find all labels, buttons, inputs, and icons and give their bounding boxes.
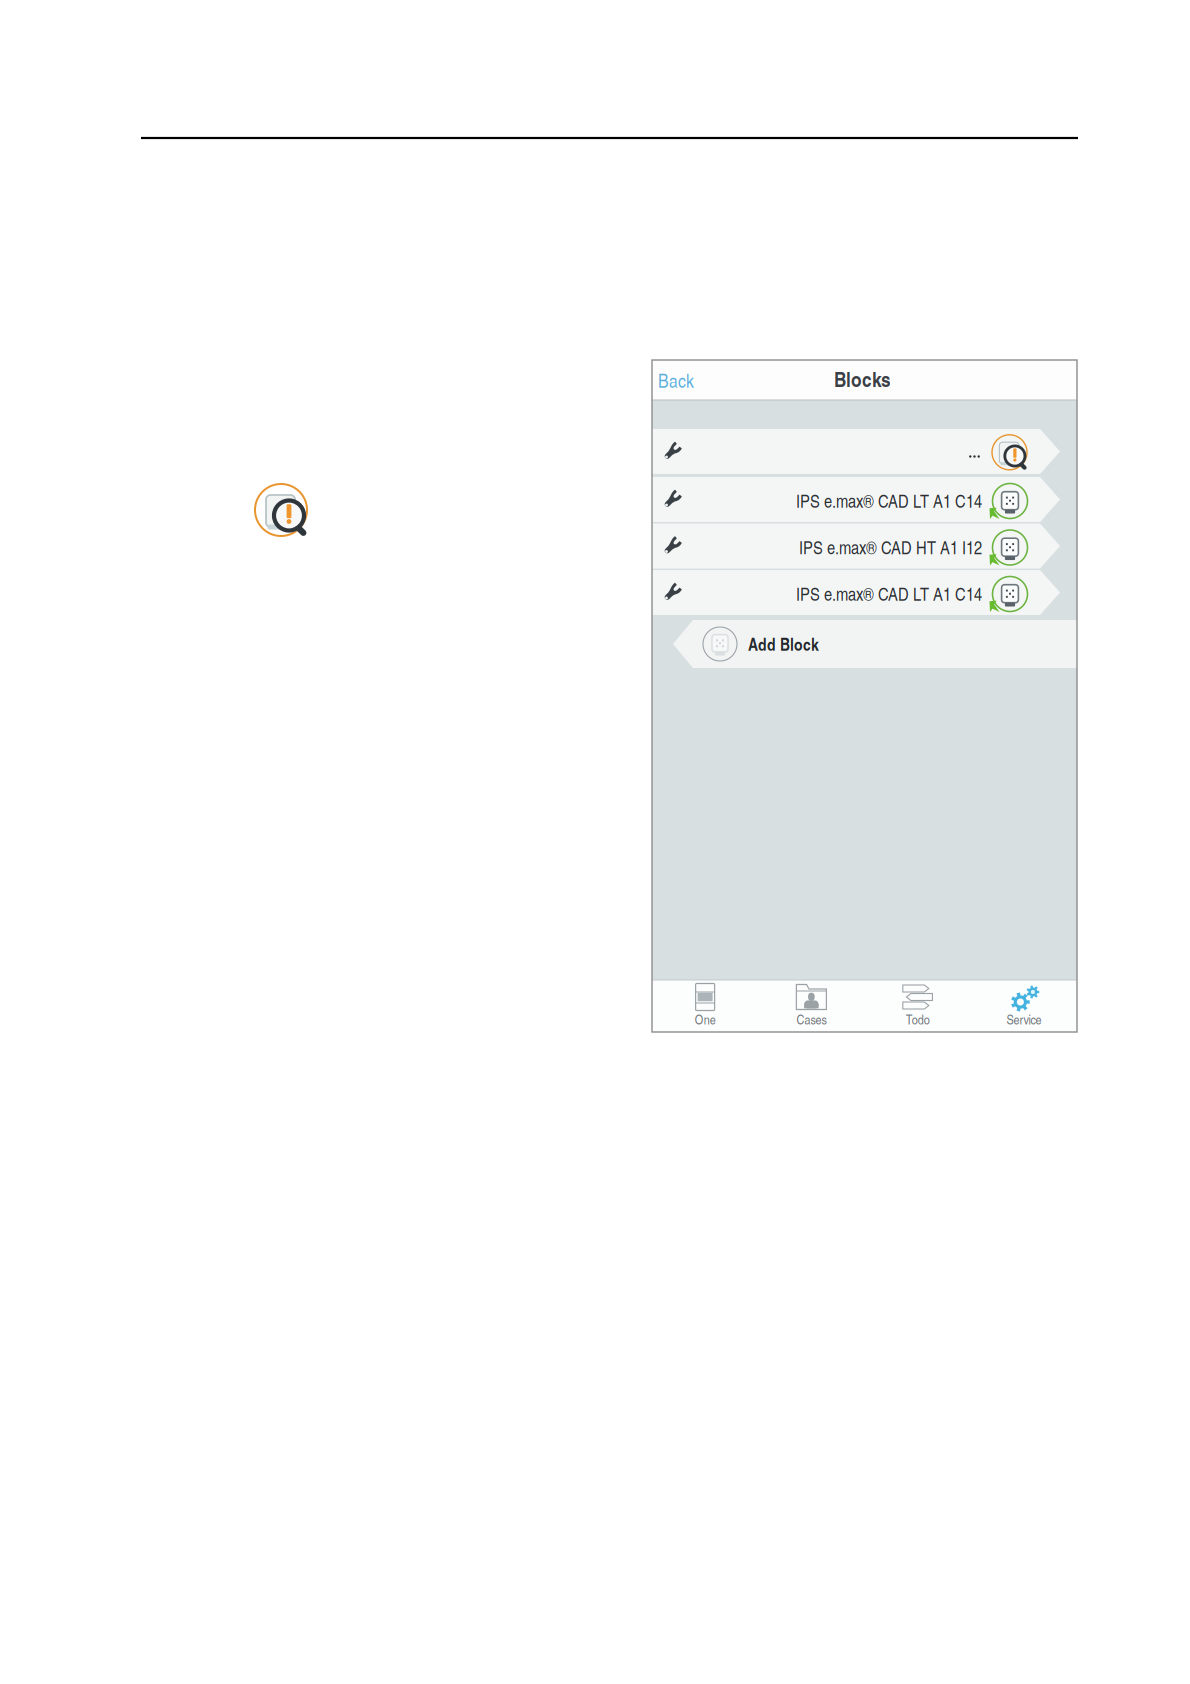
staticText: IPS e.max® CAD LT A1 C14 xyxy=(796,488,982,513)
button[interactable]: Cases xyxy=(758,980,864,1032)
staticText: IPS e.max® CAD LT A1 C14 xyxy=(796,581,982,606)
button[interactable]: IPS e.max® CAD LT A1 C14 xyxy=(652,477,1060,522)
button[interactable]: Add Block xyxy=(673,620,1077,668)
button[interactable]: Service xyxy=(971,980,1077,1032)
staticText: Blocks xyxy=(834,364,891,393)
button[interactable]: IPS e.max® CAD HT A1 I12 xyxy=(652,523,1060,568)
staticText: Service xyxy=(1006,1010,1041,1028)
button[interactable] xyxy=(652,429,1060,474)
staticText: Add Block xyxy=(748,632,819,656)
button[interactable]: IPS e.max® CAD LT A1 C14 xyxy=(652,570,1060,615)
staticText: Back xyxy=(658,367,694,393)
staticText: IPS e.max® CAD HT A1 I12 xyxy=(799,535,982,559)
staticText: Todo xyxy=(906,1010,930,1028)
button[interactable]: Back xyxy=(652,360,694,400)
staticText: Cases xyxy=(796,1010,826,1028)
staticText: One xyxy=(695,1010,716,1028)
button[interactable]: One xyxy=(652,980,758,1032)
button[interactable]: Todo xyxy=(864,980,971,1032)
